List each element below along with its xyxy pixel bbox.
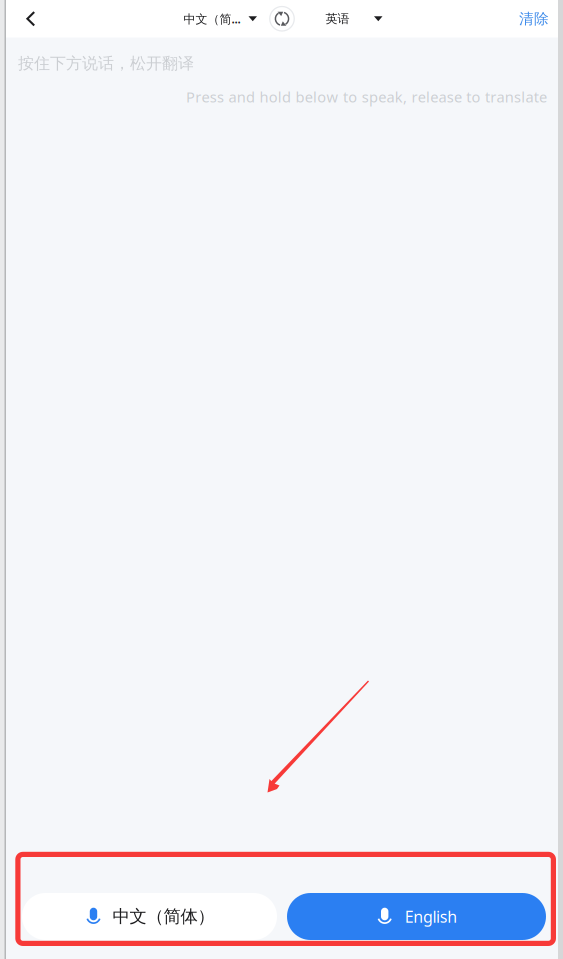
- button[interactable]: English: [287, 893, 546, 940]
- staticText: 中文（简...: [183, 11, 240, 27]
- staticText: English: [405, 906, 457, 927]
- staticText: 英语: [325, 11, 349, 26]
- button[interactable]: 清除: [519, 0, 558, 37]
- button[interactable]: 英语: [317, 0, 390, 37]
- button[interactable]: 中文（简...: [175, 0, 265, 37]
- staticText: 中文（简体）: [112, 906, 214, 927]
- staticText: 清除: [519, 10, 549, 28]
- button[interactable]: Back: [14, 0, 48, 37]
- staticText: Press and hold below to speak, release t…: [186, 87, 547, 107]
- button[interactable]: 中文（简体）: [22, 893, 277, 940]
- button[interactable]: Swap languages: [261, 0, 303, 37]
- staticText: 按住下方说话，松开翻译: [18, 53, 194, 73]
